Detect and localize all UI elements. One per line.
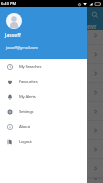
staticText: Settings	[19, 109, 34, 115]
button[interactable]: My Alerts	[0, 89, 87, 104]
button[interactable]: Settings	[0, 104, 87, 119]
button[interactable]: My Searches	[0, 59, 87, 74]
staticText: About	[19, 124, 30, 130]
staticText: My Alerts	[19, 94, 36, 100]
button[interactable]: About	[0, 119, 87, 134]
staticText: RENT	[85, 24, 97, 30]
staticText: My Searches	[19, 64, 42, 70]
staticText: jasseff@gmail.com	[6, 45, 38, 50]
staticText: 6:40 PM	[1, 1, 17, 6]
button[interactable]: Favourites	[0, 74, 87, 89]
staticText: Logout	[19, 139, 32, 145]
other: Search	[91, 11, 99, 19]
staticText: Favourites	[19, 79, 38, 85]
staticText: Jasseff	[5, 31, 21, 38]
button[interactable]: Logout	[0, 134, 87, 149]
